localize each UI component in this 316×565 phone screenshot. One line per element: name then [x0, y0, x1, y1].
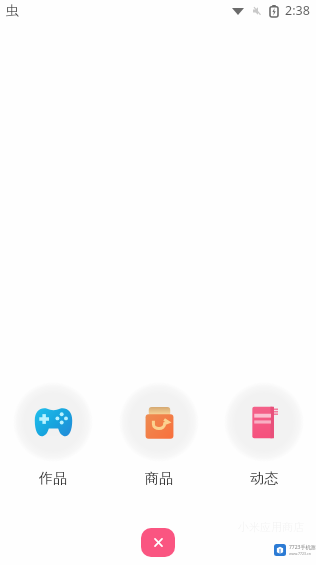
- staticText: 商品: [145, 470, 173, 486]
- staticText: 作品: [39, 470, 67, 486]
- staticText: 动态: [250, 470, 278, 486]
- button[interactable]: [224, 382, 304, 462]
- button[interactable]: [119, 382, 199, 462]
- staticText: 2:38: [285, 2, 310, 19]
- staticText: www.7723.cn: [289, 551, 311, 556]
- button[interactable]: Close: [141, 528, 175, 557]
- staticText: 虫: [6, 2, 19, 18]
- button[interactable]: [13, 382, 93, 462]
- staticText: 7723手机游戏: [289, 544, 316, 551]
